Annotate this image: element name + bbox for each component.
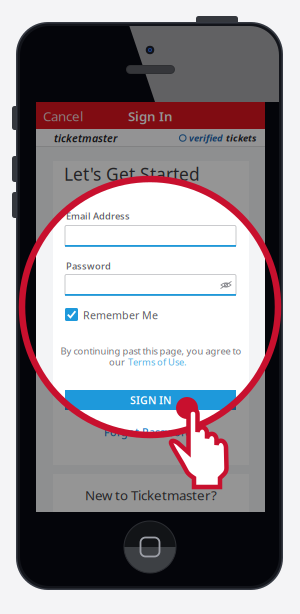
staticText: Password <box>66 260 111 272</box>
staticText: Terms of Use. <box>128 356 187 368</box>
staticText: tickets <box>226 132 256 144</box>
staticText: New to Ticketmaster? <box>85 486 217 504</box>
button[interactable]: SIGN IN <box>0 0 300 614</box>
staticText: Remember Me <box>83 308 158 322</box>
staticText: SIGN IN <box>130 393 171 407</box>
staticText: verified <box>189 132 223 144</box>
button[interactable]: Remember Me <box>0 0 300 614</box>
staticText: Sign In <box>128 107 173 125</box>
staticText: Forgot Password? <box>104 425 197 439</box>
button[interactable]: Cancel <box>0 0 300 614</box>
staticText: Email Address <box>66 210 130 222</box>
staticText: Cancel <box>43 107 83 125</box>
button[interactable]: Terms of Use. <box>0 0 300 614</box>
staticText: By continuing past this page, you agree … <box>60 345 241 357</box>
staticText: Let's Get Started <box>64 162 200 185</box>
staticText: ticketmaster <box>54 131 117 145</box>
staticText: our <box>109 356 125 368</box>
button[interactable]: Forgot Password? <box>0 0 300 614</box>
